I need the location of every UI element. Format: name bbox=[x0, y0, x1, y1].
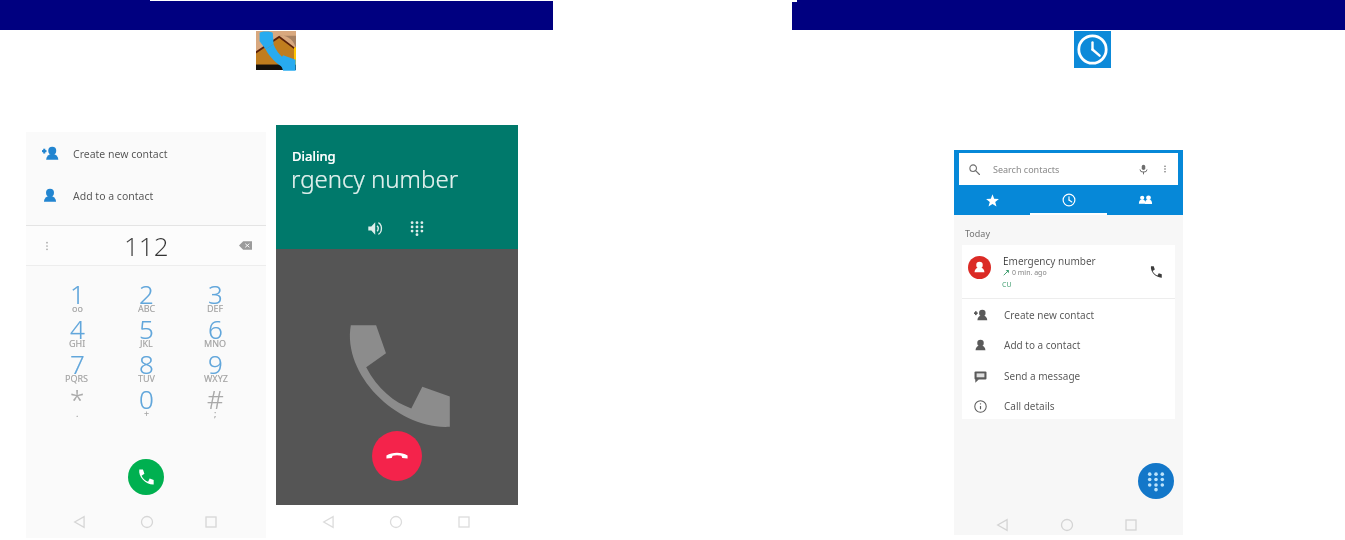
staticText: 4 bbox=[70, 311, 85, 346]
staticText: rgency number bbox=[291, 162, 459, 195]
button[interactable]: Keypad bbox=[410, 221, 424, 235]
staticText: 112 bbox=[124, 228, 169, 263]
button[interactable]: Recents bbox=[1031, 185, 1107, 215]
button[interactable]: More options bbox=[40, 239, 54, 253]
staticText: ; bbox=[214, 407, 217, 419]
button[interactable]: Home bbox=[139, 514, 155, 530]
button[interactable]: Recents bbox=[203, 514, 219, 530]
staticText: Emergency number bbox=[1003, 254, 1096, 268]
staticText: * bbox=[70, 381, 85, 416]
staticText: # bbox=[207, 381, 224, 416]
staticText: Create new contact bbox=[73, 147, 168, 161]
button[interactable]: Create new contact bbox=[26, 138, 266, 170]
staticText: 0 bbox=[139, 381, 154, 416]
staticText: Today bbox=[965, 227, 990, 239]
staticText: 6 bbox=[208, 311, 223, 346]
button[interactable]: Back bbox=[995, 517, 1011, 533]
staticText: PQRS bbox=[65, 372, 89, 384]
button[interactable]: 5 bbox=[112, 314, 181, 349]
button[interactable]: 9 bbox=[181, 349, 250, 384]
button[interactable]: Send a message bbox=[962, 361, 1175, 391]
button[interactable]: Back bbox=[72, 514, 88, 530]
staticText: Search contacts bbox=[993, 163, 1060, 175]
staticText: 1 bbox=[70, 276, 85, 311]
button[interactable]: 4 bbox=[42, 314, 112, 349]
staticText: oo bbox=[72, 302, 83, 314]
button[interactable]: 3 bbox=[181, 279, 250, 314]
staticText: Create new contact bbox=[1004, 308, 1095, 322]
button[interactable]: Add to a contact bbox=[26, 180, 266, 212]
button[interactable]: Speaker bbox=[368, 221, 383, 236]
button[interactable]: Favourites bbox=[954, 185, 1031, 215]
button[interactable]: Create new contact bbox=[962, 300, 1175, 330]
staticText: Add to a contact bbox=[1004, 338, 1081, 352]
button[interactable]: Call back bbox=[1150, 266, 1162, 278]
staticText: CU bbox=[1002, 280, 1012, 290]
button[interactable]: Dialpad bbox=[1138, 463, 1174, 499]
staticText: 2 bbox=[139, 276, 154, 311]
button[interactable]: Recents bbox=[456, 514, 472, 530]
staticText: JKL bbox=[140, 337, 153, 349]
staticText: ABC bbox=[138, 302, 156, 314]
button[interactable]: Home bbox=[388, 514, 404, 530]
staticText: Dialing bbox=[292, 147, 336, 165]
staticText: 7 bbox=[70, 346, 85, 381]
staticText: DEF bbox=[207, 302, 224, 314]
staticText: Add to a contact bbox=[73, 189, 154, 203]
staticText: 0 min. ago bbox=[1012, 268, 1047, 278]
staticText: 9 bbox=[208, 346, 223, 381]
staticText: 5 bbox=[139, 311, 154, 346]
button[interactable]: Call details bbox=[962, 391, 1175, 421]
staticText: + bbox=[144, 407, 150, 419]
button[interactable]: 7 bbox=[42, 349, 112, 384]
button[interactable]: Emergency number bbox=[962, 245, 1175, 298]
button[interactable]: Backspace bbox=[239, 239, 252, 252]
button[interactable]: Contacts bbox=[1107, 185, 1183, 215]
staticText: 8 bbox=[139, 346, 154, 381]
staticText: Send a message bbox=[1004, 369, 1081, 383]
button[interactable]: # bbox=[181, 384, 250, 419]
button[interactable]: Search contacts bbox=[959, 153, 1178, 185]
staticText: Call details bbox=[1004, 399, 1055, 413]
staticText: . bbox=[76, 407, 79, 419]
button[interactable]: Recents bbox=[1123, 517, 1139, 533]
button[interactable]: End call bbox=[372, 431, 422, 481]
staticText: 3 bbox=[208, 276, 223, 311]
button[interactable]: More options bbox=[1160, 164, 1170, 174]
staticText: WXYZ bbox=[204, 372, 228, 384]
button[interactable]: 1 bbox=[42, 279, 112, 314]
button[interactable]: Back bbox=[321, 514, 337, 530]
button[interactable]: * bbox=[42, 384, 112, 419]
button[interactable]: Call bbox=[128, 459, 164, 495]
button[interactable]: Home bbox=[1059, 517, 1075, 533]
staticText: TUV bbox=[138, 372, 155, 384]
button[interactable]: Voice search bbox=[1138, 164, 1149, 175]
staticText: MNO bbox=[204, 337, 227, 349]
button[interactable]: Add to a contact bbox=[962, 330, 1175, 360]
button[interactable]: 6 bbox=[181, 314, 250, 349]
button[interactable]: 0 bbox=[112, 384, 181, 419]
button[interactable]: 2 bbox=[112, 279, 181, 314]
staticText: GHI bbox=[69, 337, 86, 349]
button[interactable]: 8 bbox=[112, 349, 181, 384]
